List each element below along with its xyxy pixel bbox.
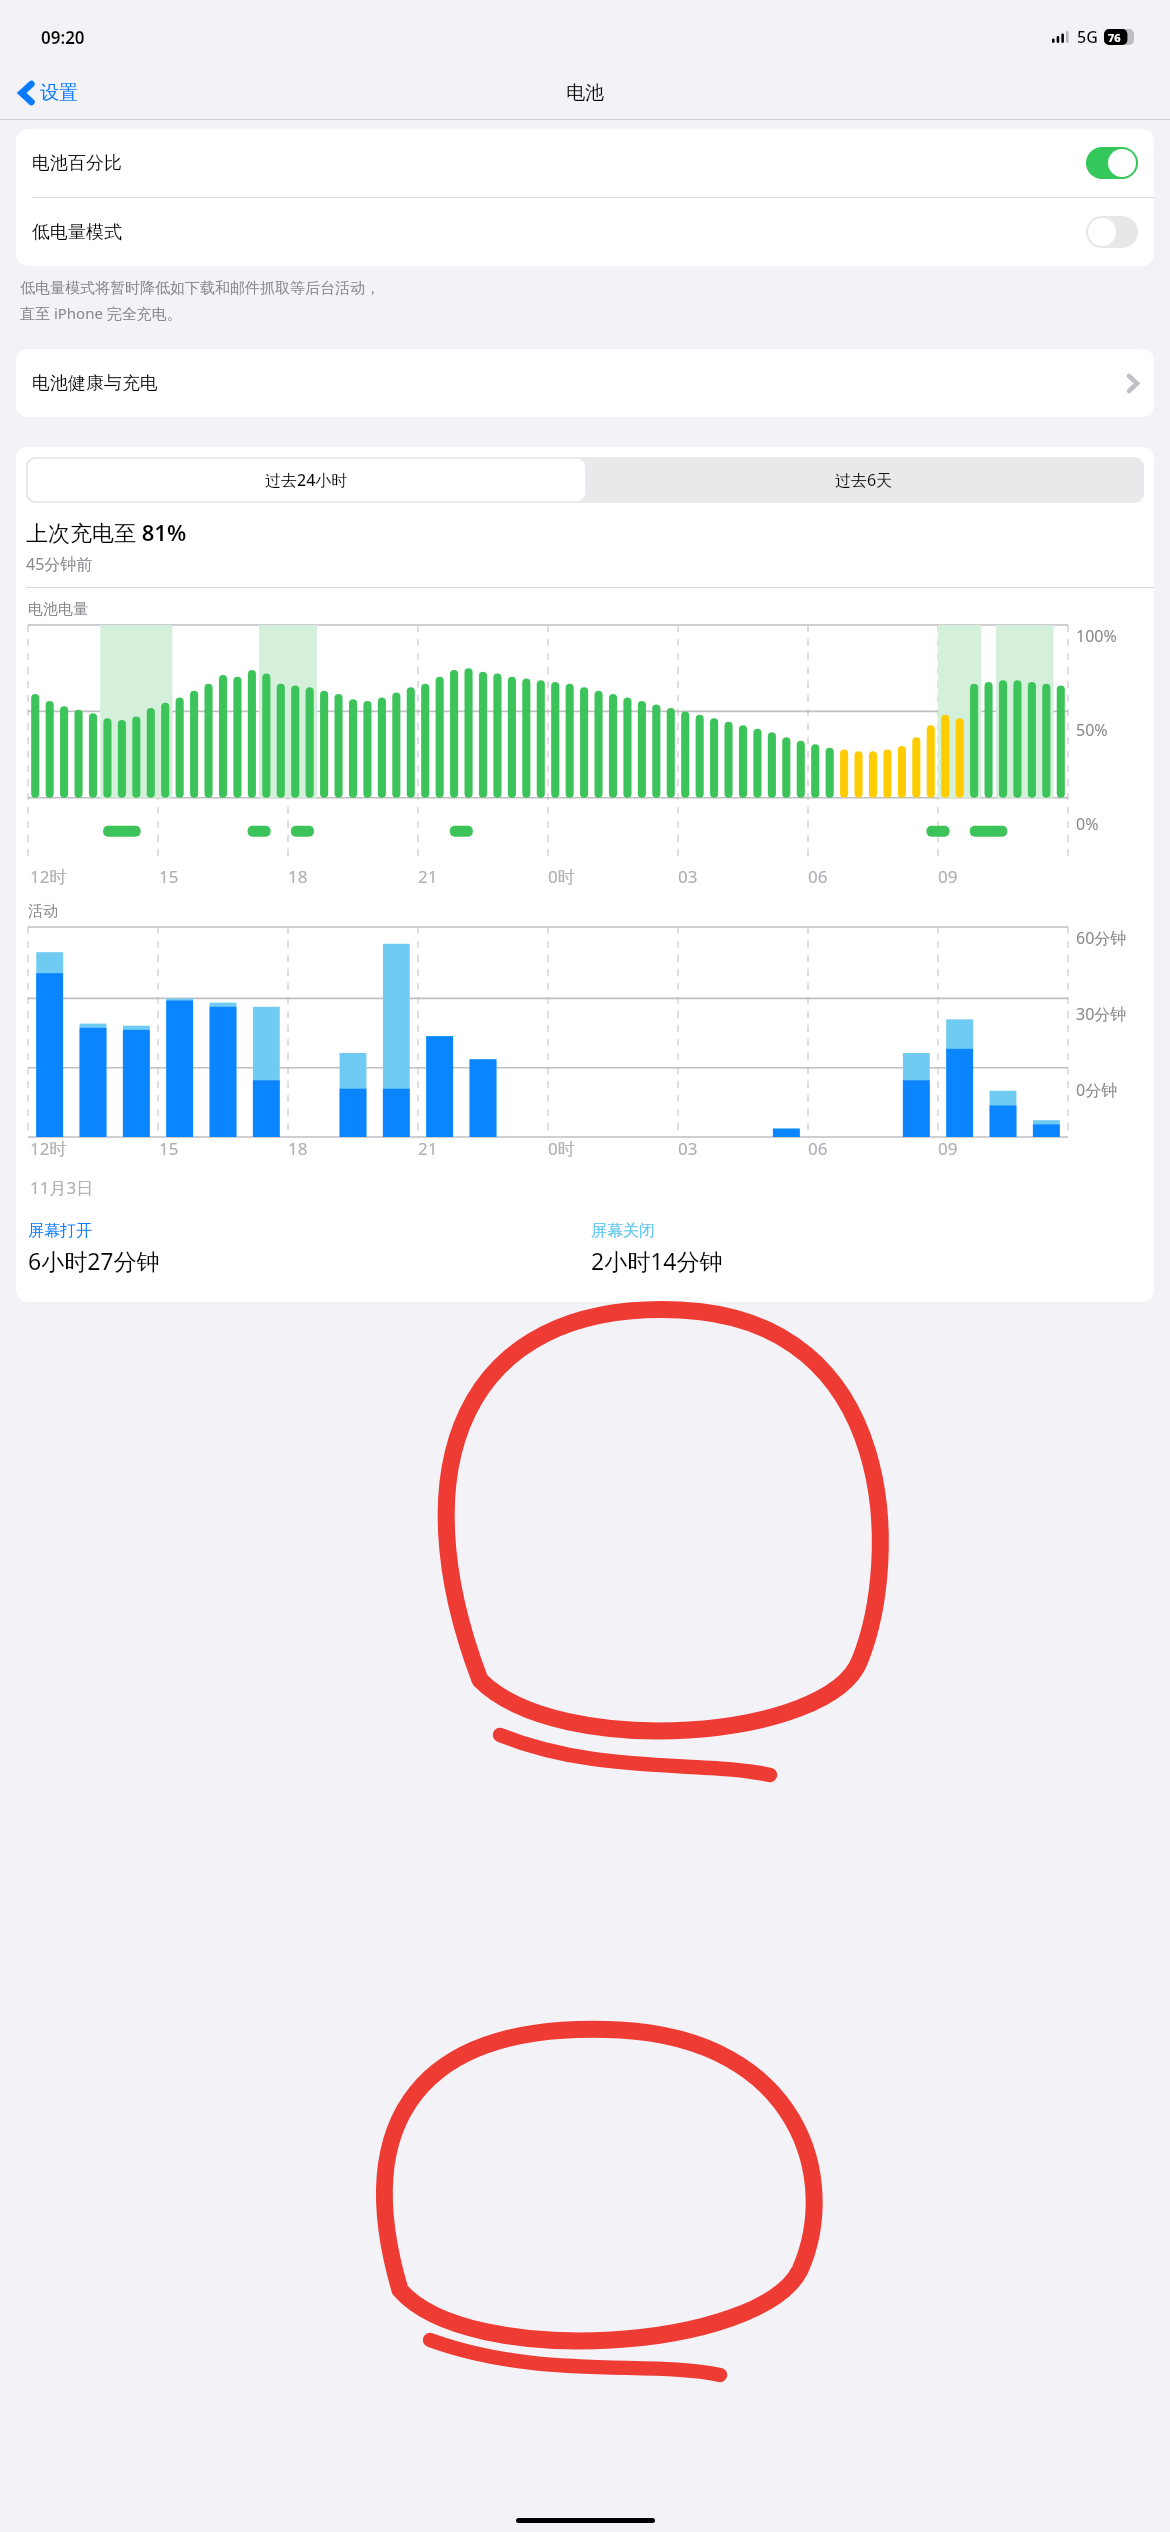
staticText: 电池百分比 [32,152,1086,175]
staticText: 11月3日 [30,1176,94,1199]
staticText: 30分钟 [1076,1003,1127,1025]
button[interactable]: 设置 [14,77,84,109]
button[interactable]: 过去24小时 [28,459,585,501]
staticText: 低电量模式将暂时降低如下载和邮件抓取等后台活动， [20,279,380,298]
staticText: 0时 [548,1137,575,1160]
button[interactable]: 开 [1086,147,1138,179]
staticText: 过去24小时 [265,469,348,491]
staticText: 60分钟 [1076,927,1127,949]
button[interactable]: 电池百分比 [16,129,1154,197]
staticText: 过去6天 [835,469,893,491]
staticText: 03 [678,865,698,888]
staticText: 03 [678,1137,698,1160]
staticText: 屏幕关闭 [591,1221,655,1241]
button[interactable]: 电池健康与充电 [16,349,1154,417]
staticText: 21 [418,1137,438,1160]
staticText: 12时 [30,865,67,888]
staticText: 活动 [28,902,58,921]
staticText: 低电量模式 [32,221,1086,244]
staticText: 上次充电至 81% [26,517,187,547]
button[interactable]: 过去6天 [585,459,1142,501]
staticText: 09 [938,1137,958,1160]
staticText: 5G [1077,26,1098,48]
staticText: 50% [1076,719,1108,741]
button[interactable]: 低电量模式 [16,198,1154,266]
staticText: 屏幕打开 [28,1221,92,1241]
staticText: 12时 [30,1137,67,1160]
staticText: 电池健康与充电 [32,372,1128,395]
staticText: 100% [1076,625,1117,647]
staticText: 18 [288,1137,308,1160]
staticText: 0% [1076,813,1099,835]
staticText: 电池电量 [28,600,88,619]
staticText: 15 [159,865,179,888]
staticText: 电池 [566,81,604,105]
staticText: 06 [808,865,828,888]
button[interactable]: 关 [1086,216,1138,248]
staticText: 6小时27分钟 [28,1245,160,1276]
staticText: 直至 iPhone 完全充电。 [20,303,182,323]
staticText: 76 [1108,30,1121,45]
staticText: 2小时14分钟 [591,1245,723,1276]
staticText: 06 [808,1137,828,1160]
staticText: 设置 [40,81,78,105]
staticText: 0时 [548,865,575,888]
staticText: 09:20 [41,26,85,49]
staticText: 21 [418,865,438,888]
staticText: 45分钟前 [26,553,93,575]
staticText: 09 [938,865,958,888]
staticText: 0分钟 [1076,1079,1118,1101]
staticText: 15 [159,1137,179,1160]
staticText: 18 [288,865,308,888]
